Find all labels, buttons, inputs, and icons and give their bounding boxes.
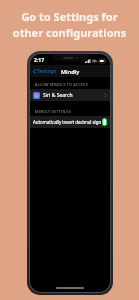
button[interactable]: Siri & Search bbox=[30, 89, 110, 101]
staticText: 2:17 bbox=[34, 57, 44, 64]
button[interactable]: Settings bbox=[32, 67, 58, 76]
staticText: other configurations bbox=[4, 25, 135, 40]
staticText: Settings bbox=[37, 68, 57, 75]
button[interactable]: Automatically insert decimal sign toggle bbox=[102, 118, 107, 126]
staticText: Go to Settings for bbox=[4, 9, 135, 24]
staticText: ALLOW MINDLY TO ACCESS bbox=[35, 82, 88, 87]
staticText: Siri & Search bbox=[43, 92, 73, 99]
staticText: MINDLY SETTINGS bbox=[35, 109, 71, 114]
staticText: Mindly bbox=[61, 68, 80, 75]
staticText: Automatically insert decimal sign bbox=[33, 119, 102, 125]
button[interactable]: Automatically insert decimal sign bbox=[30, 116, 110, 128]
